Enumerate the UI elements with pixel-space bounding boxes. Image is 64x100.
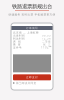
staticText: 1102** — [41, 46, 51, 49]
staticText: 08:05 — [42, 34, 51, 37]
staticText: 证件号 — [13, 46, 22, 49]
staticText: 快捷服务 实时出票 手机购票更方便 — [8, 13, 55, 16]
button[interactable]: 北京南 — 上海虹桥 — [13, 31, 51, 34]
staticText: 到达时间 — [13, 37, 25, 40]
staticText: 北京南 — 上海虹桥 — [13, 31, 39, 34]
staticText: 订单填写 — [26, 26, 38, 30]
button[interactable]: 到达时间 — [13, 37, 51, 40]
button[interactable]: 立即支付 — [13, 74, 51, 80]
button[interactable]: 乘 客 — [13, 43, 51, 46]
staticText: 12:34 — [42, 37, 51, 40]
staticText: 我已阅读并同意 — [15, 81, 36, 85]
staticText: 乘 客 — [13, 43, 21, 46]
staticText: 铁路退票新规出台 — [12, 3, 52, 10]
staticText: 二等座 — [42, 40, 51, 43]
staticText: 张 三 — [43, 43, 51, 46]
button[interactable]: 出发时间 — [13, 34, 51, 37]
staticText: 出发时间 — [13, 34, 25, 37]
button[interactable]: 席 别 — [13, 40, 51, 43]
staticText: 席 别 — [13, 40, 21, 43]
staticText: 立即支付 — [26, 76, 38, 79]
button[interactable]: 证件号 — [13, 46, 51, 49]
